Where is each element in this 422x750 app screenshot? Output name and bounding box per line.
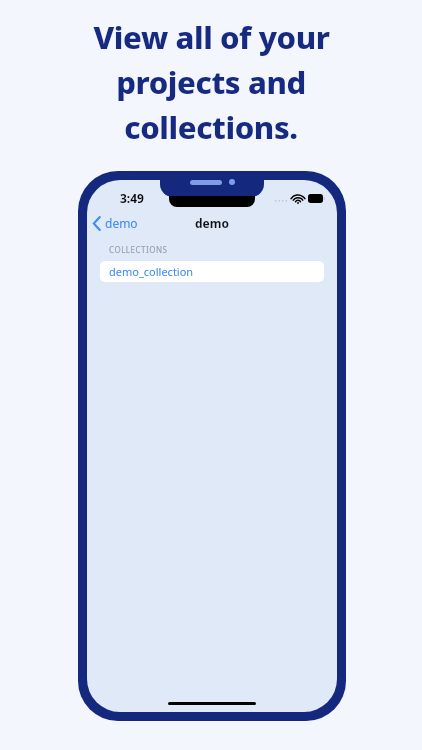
staticText: 3:49 <box>120 190 144 206</box>
button[interactable]: demo_collection <box>100 261 324 282</box>
staticText: demo <box>105 215 138 231</box>
other: Back <box>93 217 101 230</box>
staticText: demo_collection <box>109 264 194 279</box>
staticText: View all of your <box>93 16 330 58</box>
button[interactable]: Back <box>87 212 146 234</box>
staticText: collections. <box>124 106 298 148</box>
staticText: projects and <box>116 61 306 103</box>
staticText: COLLECTIONS <box>109 244 168 255</box>
staticText: demo <box>195 215 229 231</box>
